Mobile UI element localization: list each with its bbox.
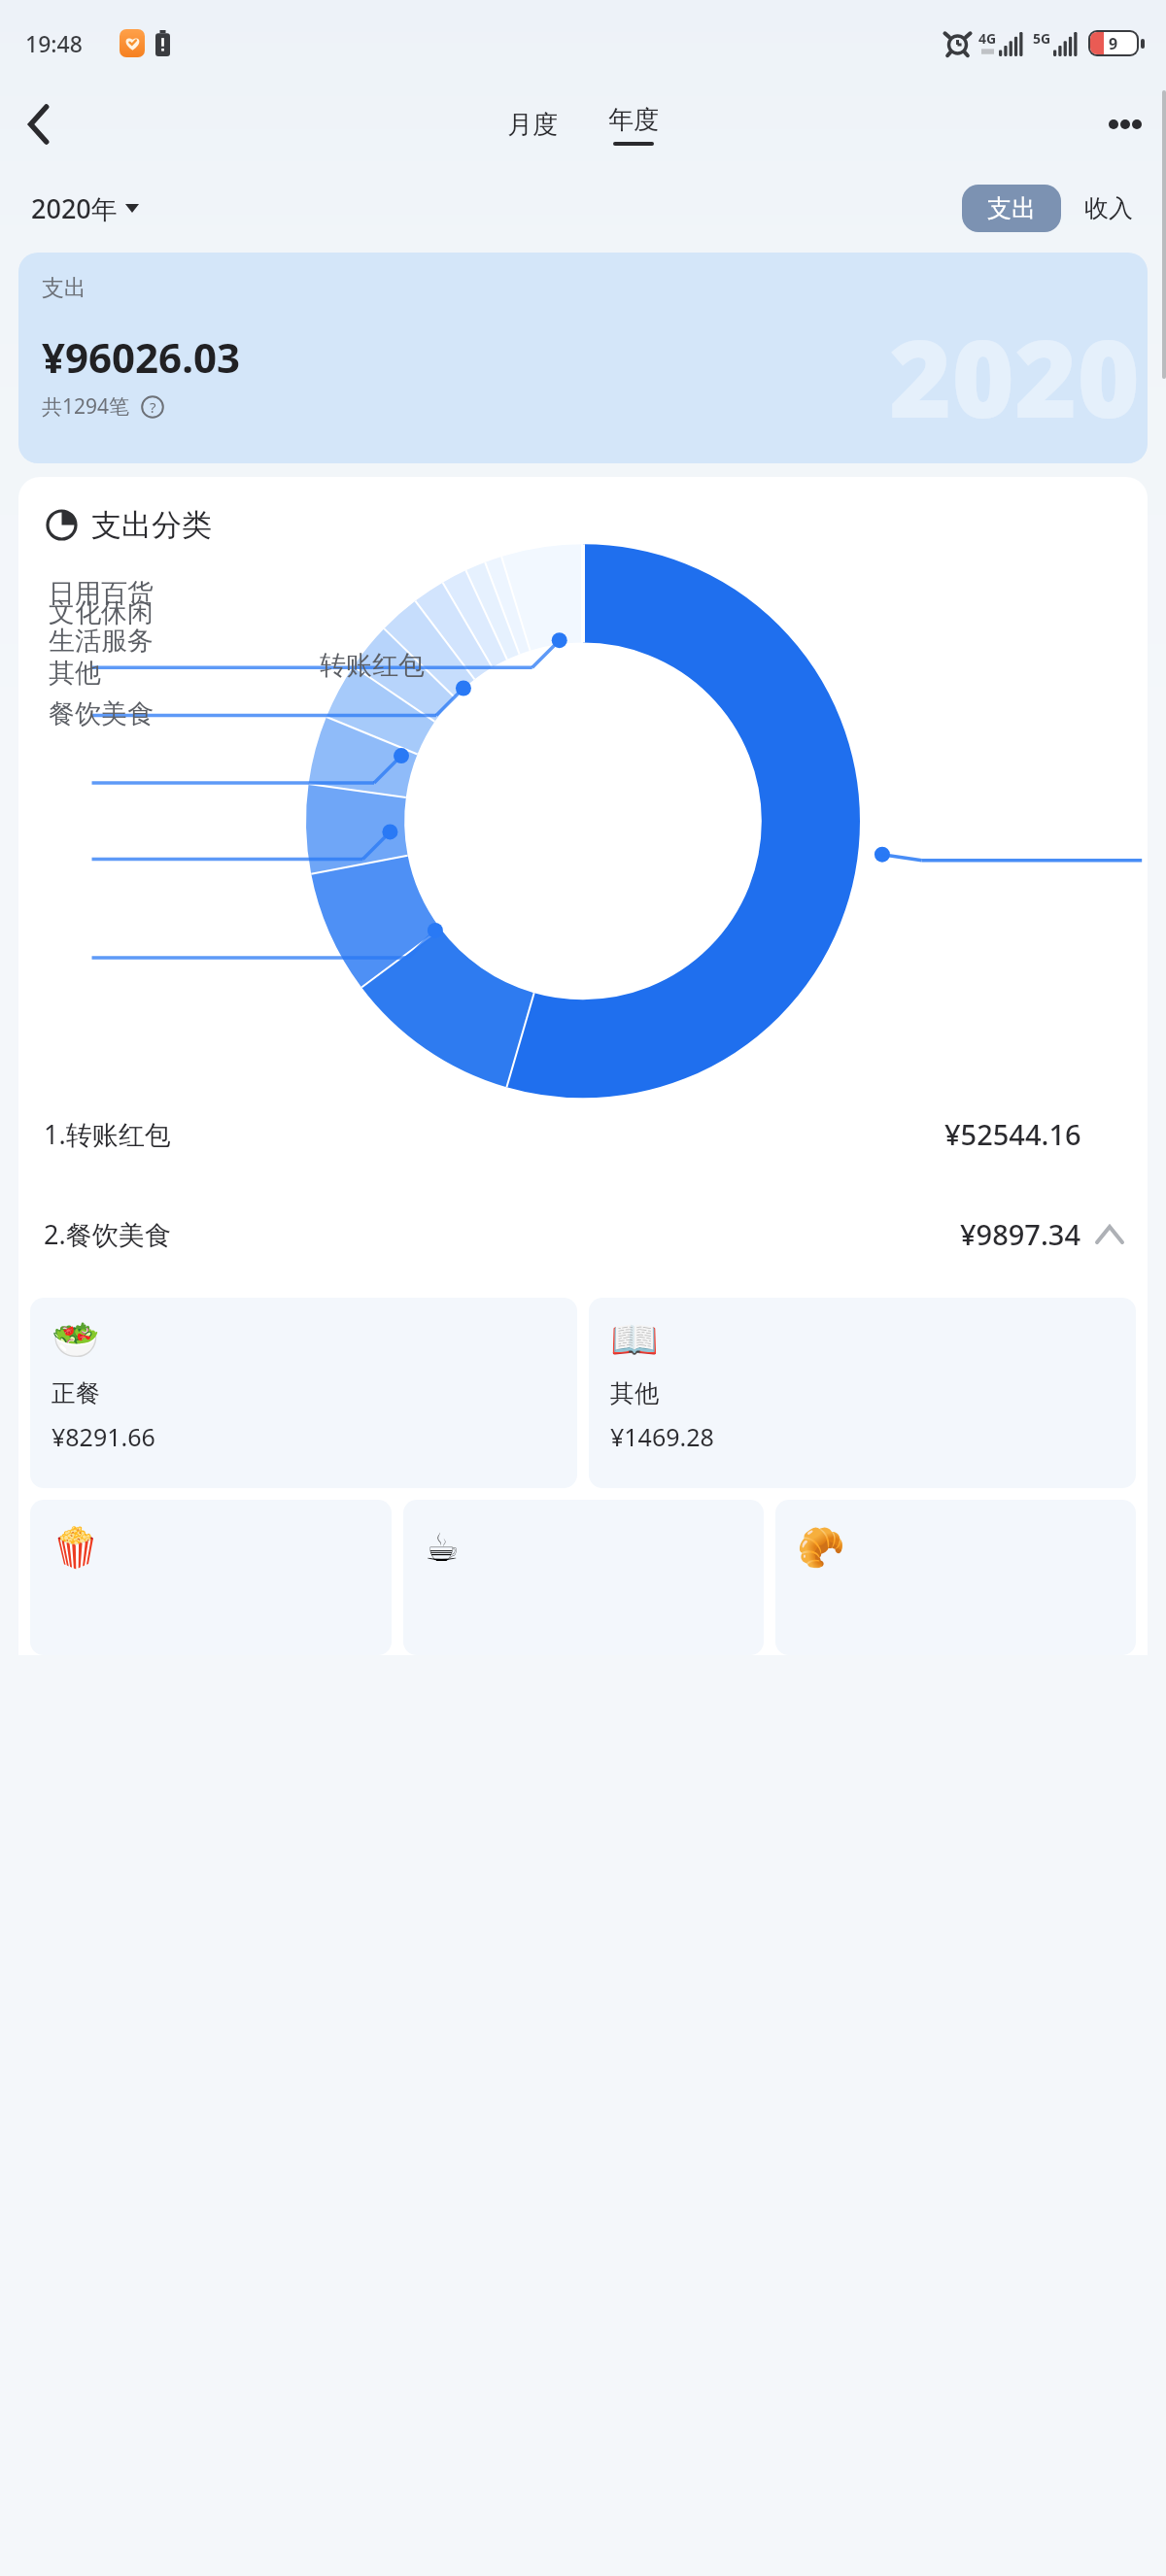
button[interactable]: 年度 — [595, 98, 672, 152]
staticText: 1.转账红包 — [44, 1116, 171, 1152]
button[interactable]: 2.餐饮美食 — [18, 1207, 1148, 1261]
staticText: 5G — [1033, 29, 1051, 48]
staticText: 9 — [1109, 33, 1118, 54]
staticText: 支出 — [42, 274, 86, 302]
staticText: 生活服务 — [49, 625, 154, 658]
button[interactable]: 🍿 — [30, 1500, 392, 1655]
button[interactable]: Info — [140, 394, 165, 420]
staticText: ¥9897.34 — [960, 1215, 1081, 1253]
staticText: ¥8291.66 — [51, 1420, 155, 1453]
staticText: 支出 — [987, 193, 1036, 223]
staticText: 19:48 — [25, 28, 83, 58]
staticText: 支出分类 — [91, 506, 212, 544]
button[interactable]: ☕ — [403, 1500, 764, 1655]
staticText: 其他 — [49, 657, 101, 690]
staticText: 正餐 — [51, 1378, 100, 1408]
button[interactable]: Back — [12, 97, 66, 152]
staticText: 🥗 — [51, 1317, 100, 1363]
staticText: 转账红包 — [320, 649, 425, 682]
staticText: 日用百货 — [49, 577, 154, 610]
staticText: 月度 — [507, 109, 558, 141]
staticText: 🍿 — [51, 1525, 100, 1571]
staticText: 2.餐饮美食 — [44, 1216, 171, 1252]
staticText: 共1294笔 — [42, 392, 130, 421]
staticText: ¥1469.28 — [610, 1420, 714, 1453]
staticText: 文化休闲 — [49, 596, 154, 629]
staticText: 餐饮美食 — [49, 697, 154, 730]
button[interactable]: 2020 — [18, 253, 1148, 463]
staticText: 其他 — [610, 1378, 659, 1408]
staticText: ? — [150, 397, 156, 417]
staticText: 年度 — [608, 104, 659, 136]
staticText: 2020 — [889, 303, 1140, 449]
button[interactable]: 🥗 — [30, 1298, 577, 1488]
button[interactable]: 支出 — [962, 185, 1061, 232]
staticText: ☕ — [425, 1525, 460, 1571]
button[interactable]: 收入 — [1075, 185, 1143, 232]
staticText: 4G — [978, 29, 997, 48]
button[interactable]: 📖 — [589, 1298, 1136, 1488]
staticText: 📖 — [610, 1317, 659, 1363]
staticText: 🥐 — [797, 1525, 845, 1571]
staticText: 2020年 — [31, 190, 118, 226]
staticText: 收入 — [1084, 193, 1133, 223]
staticText: ¥52544.16 — [944, 1115, 1081, 1153]
button[interactable]: 2020年 — [21, 183, 149, 234]
button[interactable]: 🥐 — [775, 1500, 1136, 1655]
staticText: ¥96026.03 — [42, 329, 240, 385]
button[interactable]: 1.转账红包 — [18, 1107, 1148, 1161]
button[interactable]: 月度 — [494, 103, 571, 147]
button[interactable]: More options — [1098, 97, 1152, 152]
